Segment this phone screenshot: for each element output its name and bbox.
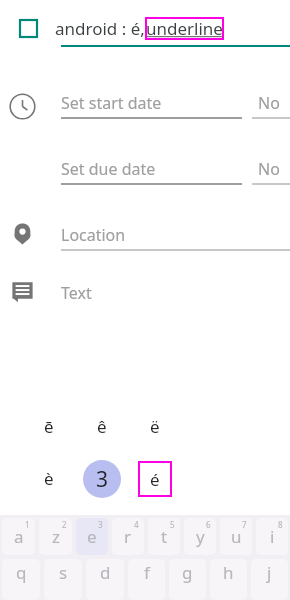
staticText: e [87,525,97,548]
button[interactable]: g [169,559,206,600]
button[interactable]: é [128,452,181,505]
staticText: é [150,468,160,491]
button[interactable]: i [256,518,288,555]
button[interactable]: ē [22,400,75,452]
staticText: f [144,561,150,584]
staticText: d [100,561,111,584]
button[interactable]: ë [128,400,181,452]
button[interactable]: e [76,518,108,555]
staticText: 4 [134,519,139,530]
button[interactable]: Set start date repeat [252,88,290,118]
button[interactable]: Set start date [61,88,242,118]
staticText: ë [150,415,160,438]
staticText: android : é, [55,17,145,40]
staticText: g [182,561,193,584]
staticText: ē [44,415,54,438]
button[interactable]: 3 [75,452,128,505]
button[interactable]: Set due date [61,154,242,184]
staticText: Text [61,282,92,304]
staticText: Set start date [61,92,162,114]
button[interactable]: Set due date repeat [252,154,290,184]
button[interactable]: s [44,559,82,600]
button[interactable]: Location [61,220,290,250]
staticText: s [59,561,68,584]
staticText: z [52,525,60,548]
staticText: q [16,561,27,584]
button[interactable]: d [86,559,124,600]
staticText: Set due date [61,158,156,180]
button[interactable]: z [39,518,72,555]
button[interactable]: Mark complete [12,12,44,44]
other: Time [9,93,36,120]
button[interactable]: Text [61,278,290,308]
button[interactable]: è [22,452,75,505]
staticText: No [258,158,280,180]
staticText: ê [97,415,107,438]
staticText: r [124,525,132,548]
button[interactable]: q [2,559,40,600]
staticText: Location [61,224,126,246]
staticText: 2 [62,519,67,530]
button[interactable]: u [220,518,252,555]
staticText: h [223,561,234,584]
other: Location [11,223,34,246]
staticText: underline [146,17,223,40]
button[interactable]: r [112,518,144,555]
staticText: 8 [278,519,283,530]
staticText: j [267,561,272,584]
staticText: è [44,467,54,490]
button[interactable]: t [148,518,180,555]
other: Notes [11,280,34,303]
staticText: i [270,525,275,548]
staticText: y [196,525,205,548]
staticText: 1 [25,519,30,530]
staticText: 3 [98,519,103,530]
button[interactable]: ê [75,400,128,452]
staticText: 6 [206,519,211,530]
staticText: No [258,92,280,114]
staticText: t [161,525,168,548]
button[interactable]: j [251,559,288,600]
button[interactable]: h [210,559,247,600]
staticText: u [231,525,242,548]
button[interactable]: y [184,518,216,555]
staticText: 5 [170,519,175,530]
staticText: 3 [96,465,109,494]
staticText: 7 [242,519,247,530]
button[interactable]: a [2,518,35,555]
staticText: a [14,525,24,548]
button[interactable]: android : é, [55,17,290,40]
button[interactable]: f [128,559,165,600]
